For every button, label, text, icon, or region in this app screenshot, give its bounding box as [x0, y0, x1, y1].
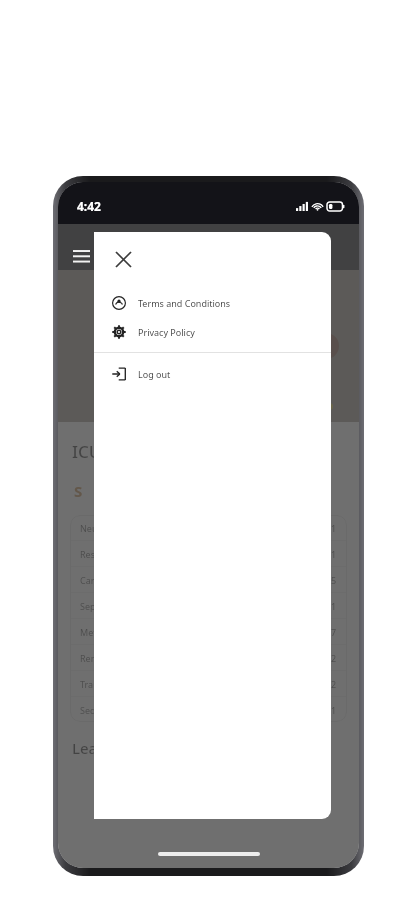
- staticText: S: [74, 481, 83, 501]
- staticText: Trauma: [80, 678, 113, 690]
- staticText: Respiratory: [80, 548, 129, 560]
- staticText: 1: [331, 600, 337, 612]
- staticText: Neurology: [80, 522, 125, 534]
- staticText: Terms and Conditions: [138, 297, 231, 309]
- staticText: 5: [331, 574, 337, 586]
- staticText: Privacy Policy: [138, 326, 195, 338]
- button[interactable]: Terms and Conditions: [94, 288, 331, 317]
- staticText: 4:42: [77, 198, 101, 214]
- staticText: 1: [331, 522, 337, 534]
- button[interactable]: Privacy Policy: [94, 317, 331, 346]
- button[interactable]: Log out: [94, 359, 331, 388]
- button[interactable]: Close navigation menu: [106, 242, 140, 276]
- staticText: 7: [331, 626, 337, 638]
- staticText: Log out: [138, 368, 171, 380]
- staticText: Renal: [80, 652, 104, 664]
- staticText: 1: [331, 704, 337, 716]
- staticText: Sepsis: [80, 600, 107, 612]
- staticText: Learning: [72, 738, 136, 758]
- staticText: 2: [331, 652, 337, 664]
- staticText: Cardiac: [80, 574, 112, 586]
- button[interactable]: Open navigation menu: [64, 239, 98, 273]
- staticText: ICU Protocols: [72, 440, 182, 463]
- staticText: 1: [331, 548, 337, 560]
- staticText: Sedation: [80, 704, 118, 716]
- staticText: 2: [331, 678, 337, 690]
- staticText: Metabolic: [80, 626, 122, 638]
